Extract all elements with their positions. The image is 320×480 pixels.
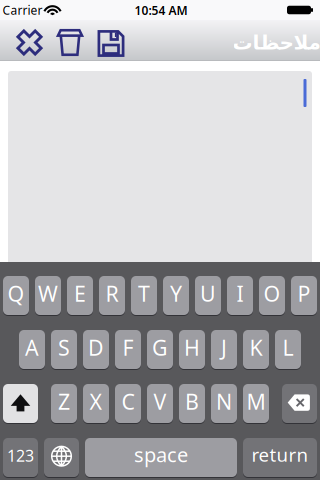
button[interactable]: Delete note xyxy=(56,28,84,57)
button[interactable]: Shift xyxy=(3,383,38,424)
staticText: C xyxy=(121,387,134,416)
staticText: L xyxy=(282,333,293,362)
button[interactable]: H xyxy=(179,329,205,370)
button[interactable]: Q xyxy=(3,275,29,316)
staticText: Z xyxy=(58,387,70,416)
staticText: Q xyxy=(7,279,24,308)
staticText: ملاحظات xyxy=(232,31,320,54)
button[interactable]: M xyxy=(243,383,269,424)
staticText: N xyxy=(216,387,232,416)
staticText: G xyxy=(152,333,168,362)
button[interactable]: C xyxy=(115,383,141,424)
staticText: P xyxy=(297,279,310,308)
staticText: Y xyxy=(170,279,182,308)
staticText: 10:54 AM xyxy=(134,2,187,18)
staticText: X xyxy=(89,387,102,416)
button[interactable]: Z xyxy=(51,383,77,424)
staticText: 123 xyxy=(7,445,34,466)
button[interactable]: W xyxy=(35,275,61,316)
button[interactable]: P xyxy=(291,275,317,316)
button[interactable]: E xyxy=(67,275,93,316)
button[interactable]: Y xyxy=(163,275,189,316)
button[interactable]: Close xyxy=(14,27,44,57)
button[interactable]: Save xyxy=(97,30,124,57)
button[interactable]: A xyxy=(19,329,45,370)
button[interactable]: J xyxy=(211,329,237,370)
staticText: K xyxy=(249,333,262,362)
button[interactable]: S xyxy=(51,329,77,370)
button[interactable]: L xyxy=(275,329,301,370)
staticText: V xyxy=(153,387,166,416)
button[interactable]: I xyxy=(227,275,253,316)
button[interactable]: return xyxy=(243,437,317,478)
button[interactable]: X xyxy=(83,383,109,424)
staticText: space xyxy=(134,441,188,468)
staticText: J xyxy=(221,333,227,362)
staticText: E xyxy=(74,279,86,308)
staticText: H xyxy=(184,333,200,362)
button[interactable]: B xyxy=(179,383,205,424)
staticText: U xyxy=(200,279,216,308)
button[interactable]: K xyxy=(243,329,269,370)
staticText: M xyxy=(246,387,265,416)
button[interactable]: space xyxy=(85,437,237,478)
staticText: T xyxy=(138,279,150,308)
button[interactable]: T xyxy=(131,275,157,316)
button[interactable]: V xyxy=(147,383,173,424)
button[interactable]: N xyxy=(211,383,237,424)
staticText: S xyxy=(58,333,70,362)
button[interactable]: Delete xyxy=(282,383,317,424)
staticText: return xyxy=(251,442,308,467)
button[interactable]: F xyxy=(115,329,141,370)
staticText: O xyxy=(263,279,280,308)
staticText: F xyxy=(122,333,133,362)
staticText: R xyxy=(105,279,118,308)
button[interactable]: 123 xyxy=(3,437,38,478)
button[interactable]: R xyxy=(99,275,125,316)
staticText: I xyxy=(236,279,243,308)
button[interactable]: U xyxy=(195,275,221,316)
button[interactable]: G xyxy=(147,329,173,370)
button[interactable]: O xyxy=(259,275,285,316)
staticText: W xyxy=(38,279,58,308)
staticText: B xyxy=(185,387,199,416)
staticText: Carrier xyxy=(2,2,42,18)
staticText: A xyxy=(25,333,39,362)
button[interactable]: Next keyboard xyxy=(44,437,79,478)
staticText: D xyxy=(88,333,104,362)
button[interactable]: D xyxy=(83,329,109,370)
